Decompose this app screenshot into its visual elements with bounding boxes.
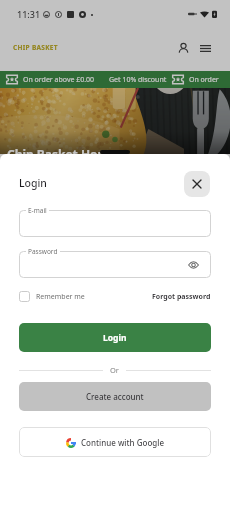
button[interactable]: Continue with Google [19, 427, 211, 457]
button[interactable]: Login [19, 323, 211, 352]
button[interactable]: Create account [19, 382, 211, 411]
staticText: 11:31 [17, 8, 41, 20]
button[interactable]: Remember me [19, 291, 85, 302]
staticText: CHIP BASKET [13, 43, 58, 52]
staticText: Forgot password [152, 292, 211, 302]
staticText: On order above £0.00 [23, 75, 95, 85]
staticText: On order above £0.00 [189, 75, 230, 85]
button[interactable]: Close [184, 171, 210, 197]
staticText: Password [28, 247, 58, 256]
button[interactable]: Account [174, 39, 192, 57]
staticText: E-mail [28, 206, 47, 215]
staticText: Get 10% discount [109, 75, 167, 85]
staticText: Login [19, 176, 47, 190]
button[interactable]: Forgot password [152, 292, 211, 302]
staticText: Remember me [36, 292, 85, 302]
staticText: Login [103, 332, 127, 344]
button[interactable]: Menu [196, 39, 214, 57]
staticText: Continue with Google [81, 437, 164, 448]
button[interactable]: Show password [187, 258, 200, 271]
staticText: Or [110, 365, 119, 375]
staticText: Create account [86, 391, 144, 402]
staticText: Chip Basket House [7, 146, 119, 154]
